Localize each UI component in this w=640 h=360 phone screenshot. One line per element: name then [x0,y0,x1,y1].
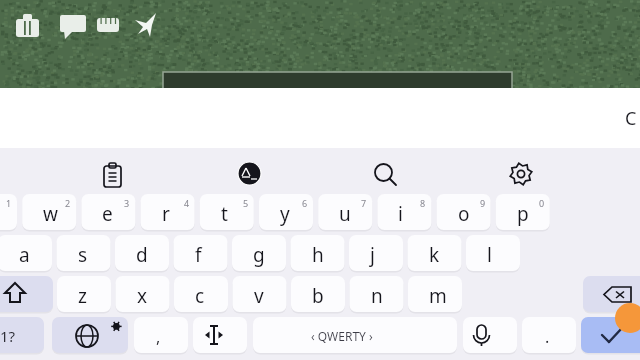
button[interactable]: e [81,194,135,230]
staticText: 2 [65,197,71,209]
staticText: . [545,326,550,348]
button[interactable]: v [233,276,287,312]
button[interactable]: Fly [128,8,162,42]
staticText: 5 [243,197,249,209]
staticText: 0 [539,197,545,209]
button[interactable]: Space [253,317,457,353]
button[interactable]: w [22,194,76,230]
staticText: 9 [480,197,486,209]
button[interactable]: Settings [502,156,538,192]
staticText: h [312,242,324,268]
staticText: s [78,242,88,268]
button[interactable]: Period [522,317,576,353]
staticText: , [156,326,161,348]
button[interactable]: i [377,194,431,230]
button[interactable]: o [437,194,491,230]
button[interactable]: x [116,276,170,312]
staticText: b [312,283,324,309]
button[interactable]: Inventory [10,8,44,42]
button[interactable]: z [57,276,111,312]
button[interactable]: u [318,194,372,230]
button[interactable]: h [291,235,345,271]
button[interactable]: Clipboard [96,156,132,192]
button[interactable]: Chat [55,8,89,42]
staticText: o [458,201,470,227]
staticText: p [517,201,529,227]
staticText: i [398,201,403,227]
staticText: 8 [420,197,426,209]
staticText: 1? [0,326,16,346]
staticText: 3 [124,197,130,209]
staticText: C [625,106,637,131]
staticText: j [370,242,375,268]
staticText: d [136,242,148,268]
button[interactable]: s [57,235,111,271]
button[interactable]: q [0,194,17,230]
staticText: 6 [302,197,308,209]
staticText: f [195,242,202,268]
button[interactable]: t [200,194,254,230]
button[interactable]: y [259,194,313,230]
button[interactable]: Punch [92,8,126,42]
button[interactable]: Enter [581,317,640,353]
button[interactable]: Translate [230,156,266,192]
button[interactable]: m [408,276,462,312]
staticText: z [78,283,87,309]
staticText: u [339,201,351,227]
button[interactable]: b [291,276,345,312]
button[interactable]: g [232,235,286,271]
button[interactable]: a [0,235,52,271]
staticText: l [487,242,492,268]
button[interactable]: Move cursor [193,317,247,353]
button[interactable]: j [349,235,403,271]
staticText: c [195,283,205,309]
button[interactable]: Change language [52,317,128,353]
button[interactable]: c [174,276,228,312]
button[interactable]: f [174,235,228,271]
staticText: v [254,283,264,309]
staticText: 1 [6,197,12,209]
staticText: t [221,201,228,227]
button[interactable]: k [408,235,462,271]
staticText: k [429,242,440,268]
button[interactable]: Voice input [463,317,517,353]
staticText: 7 [361,197,367,209]
staticText: a [19,242,30,268]
staticText: g [253,242,265,268]
button[interactable]: n [350,276,404,312]
staticText: r [162,201,170,227]
button[interactable]: l [466,235,520,271]
staticText: n [371,283,383,309]
staticText: y [280,201,290,227]
button[interactable]: Shift [0,276,53,312]
button[interactable]: d [115,235,169,271]
button[interactable]: Comma [134,317,188,353]
staticText: 4 [184,197,190,209]
staticText: m [429,283,447,309]
staticText: w [43,201,58,227]
button[interactable]: p [496,194,550,230]
staticText: e [102,201,113,227]
staticText: x [137,283,148,309]
staticText: ‹ QWERTY › [311,328,373,344]
button[interactable]: Search [366,156,402,192]
button[interactable]: Symbols [0,317,44,353]
button[interactable]: r [141,194,195,230]
button[interactable]: Backspace [583,276,640,312]
